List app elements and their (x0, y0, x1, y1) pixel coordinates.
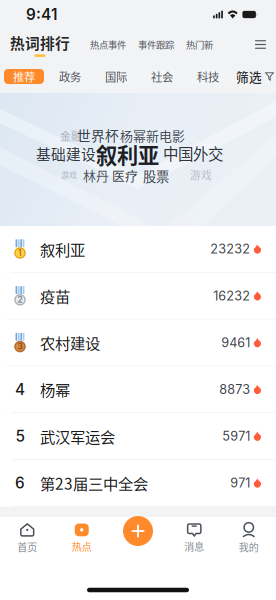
staticText: 3 (17, 342, 22, 352)
button[interactable]: 筛选 (236, 67, 274, 86)
button[interactable]: 消息 (167, 523, 221, 554)
button[interactable]: 推荐 (4, 69, 44, 84)
staticText: 2 (17, 295, 22, 305)
staticText: 叙利亚 (96, 139, 159, 170)
staticText: 971 (230, 475, 250, 491)
staticText: 4 (15, 380, 25, 399)
staticText: 金融 (60, 128, 82, 144)
staticText: 事件跟踪 (138, 38, 174, 51)
button[interactable]: 热点事件 (90, 38, 126, 51)
staticText: 第23届三中全会 (40, 472, 148, 494)
button[interactable]: 国际 (96, 69, 136, 84)
staticText: 政务 (59, 68, 81, 85)
staticText: 消息 (184, 539, 204, 554)
staticText: 武汉军运会 (40, 425, 115, 447)
button[interactable]: 首页 (0, 523, 54, 554)
button[interactable]: 事件跟踪 (138, 38, 174, 51)
staticText: 游戏 (61, 169, 77, 180)
staticText: 社会 (151, 68, 173, 85)
button[interactable]: 科技 (188, 69, 228, 84)
button[interactable]: 2 (0, 273, 276, 320)
staticText: 股票 (143, 166, 169, 185)
staticText: 5 (15, 427, 24, 445)
staticText: 1 (18, 248, 22, 258)
staticText: 8873 (219, 382, 250, 397)
button[interactable]: 热门新 (186, 38, 213, 51)
button[interactable]: 政务 (50, 69, 90, 84)
staticText: 热门新 (186, 38, 213, 51)
staticText: 叙利亚 (40, 238, 85, 260)
button[interactable]: 1 (0, 226, 276, 273)
staticText: 筛选 (236, 67, 262, 86)
staticText: 热词排行 (10, 32, 70, 53)
staticText: 推荐 (13, 68, 35, 85)
staticText: 疫苗 (40, 285, 70, 307)
button[interactable]: 3 (0, 320, 276, 366)
staticText: 杨幂 (40, 378, 70, 400)
staticText: 农村建设 (40, 331, 100, 354)
staticText: 游戏 (190, 167, 212, 183)
staticText: 科技 (197, 68, 219, 85)
staticText: 9:41 (26, 5, 57, 24)
staticText: 中国外交 (163, 142, 223, 164)
staticText: 热点事件 (90, 38, 126, 51)
staticText: 6 (15, 474, 25, 492)
button[interactable]: 社会 (142, 69, 182, 84)
staticText: 首页 (17, 540, 37, 554)
button[interactable]: Compose (123, 516, 153, 546)
staticText: 国际 (105, 68, 127, 85)
staticText: 5971 (222, 428, 250, 444)
button[interactable]: 4 (0, 366, 276, 413)
button[interactable]: 5 (0, 413, 276, 460)
staticText: 16232 (213, 288, 250, 303)
button[interactable]: 6 (0, 460, 276, 507)
staticText: 世界杯 (77, 125, 119, 145)
staticText: 我的 (239, 540, 259, 554)
button[interactable]: Menu (253, 36, 268, 52)
staticText: 23232 (210, 241, 250, 257)
button[interactable]: 热点 (54, 523, 109, 554)
staticText: 热点 (72, 539, 92, 554)
staticText: 杨幂新电影 (120, 126, 185, 145)
button[interactable]: 热词排行 (10, 32, 70, 57)
staticText: 基础建设 (36, 143, 96, 164)
staticText: 9461 (221, 335, 250, 350)
staticText: 林丹 (83, 166, 109, 184)
button[interactable]: 我的 (221, 523, 276, 554)
staticText: 医疗 (112, 166, 138, 184)
